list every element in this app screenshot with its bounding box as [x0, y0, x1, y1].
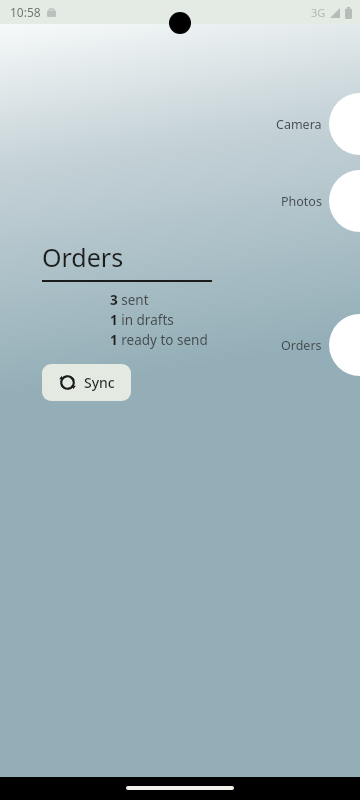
staticText: Orders: [42, 240, 124, 274]
button[interactable]: Photos: [240, 170, 360, 232]
staticText: Camera: [276, 116, 322, 133]
button[interactable]: Camera: [240, 93, 360, 155]
staticText: 1 ready to send: [110, 331, 208, 349]
staticText: Sync: [84, 373, 115, 392]
button[interactable]: Sync: [42, 364, 131, 401]
staticText: 1 in drafts: [110, 311, 174, 329]
staticText: Photos: [281, 193, 322, 210]
staticText: Orders: [281, 337, 322, 354]
staticText: 3G: [311, 5, 326, 20]
button[interactable]: Orders: [240, 314, 360, 376]
staticText: 10:58: [10, 4, 41, 20]
staticText: 3 sent: [110, 291, 149, 309]
